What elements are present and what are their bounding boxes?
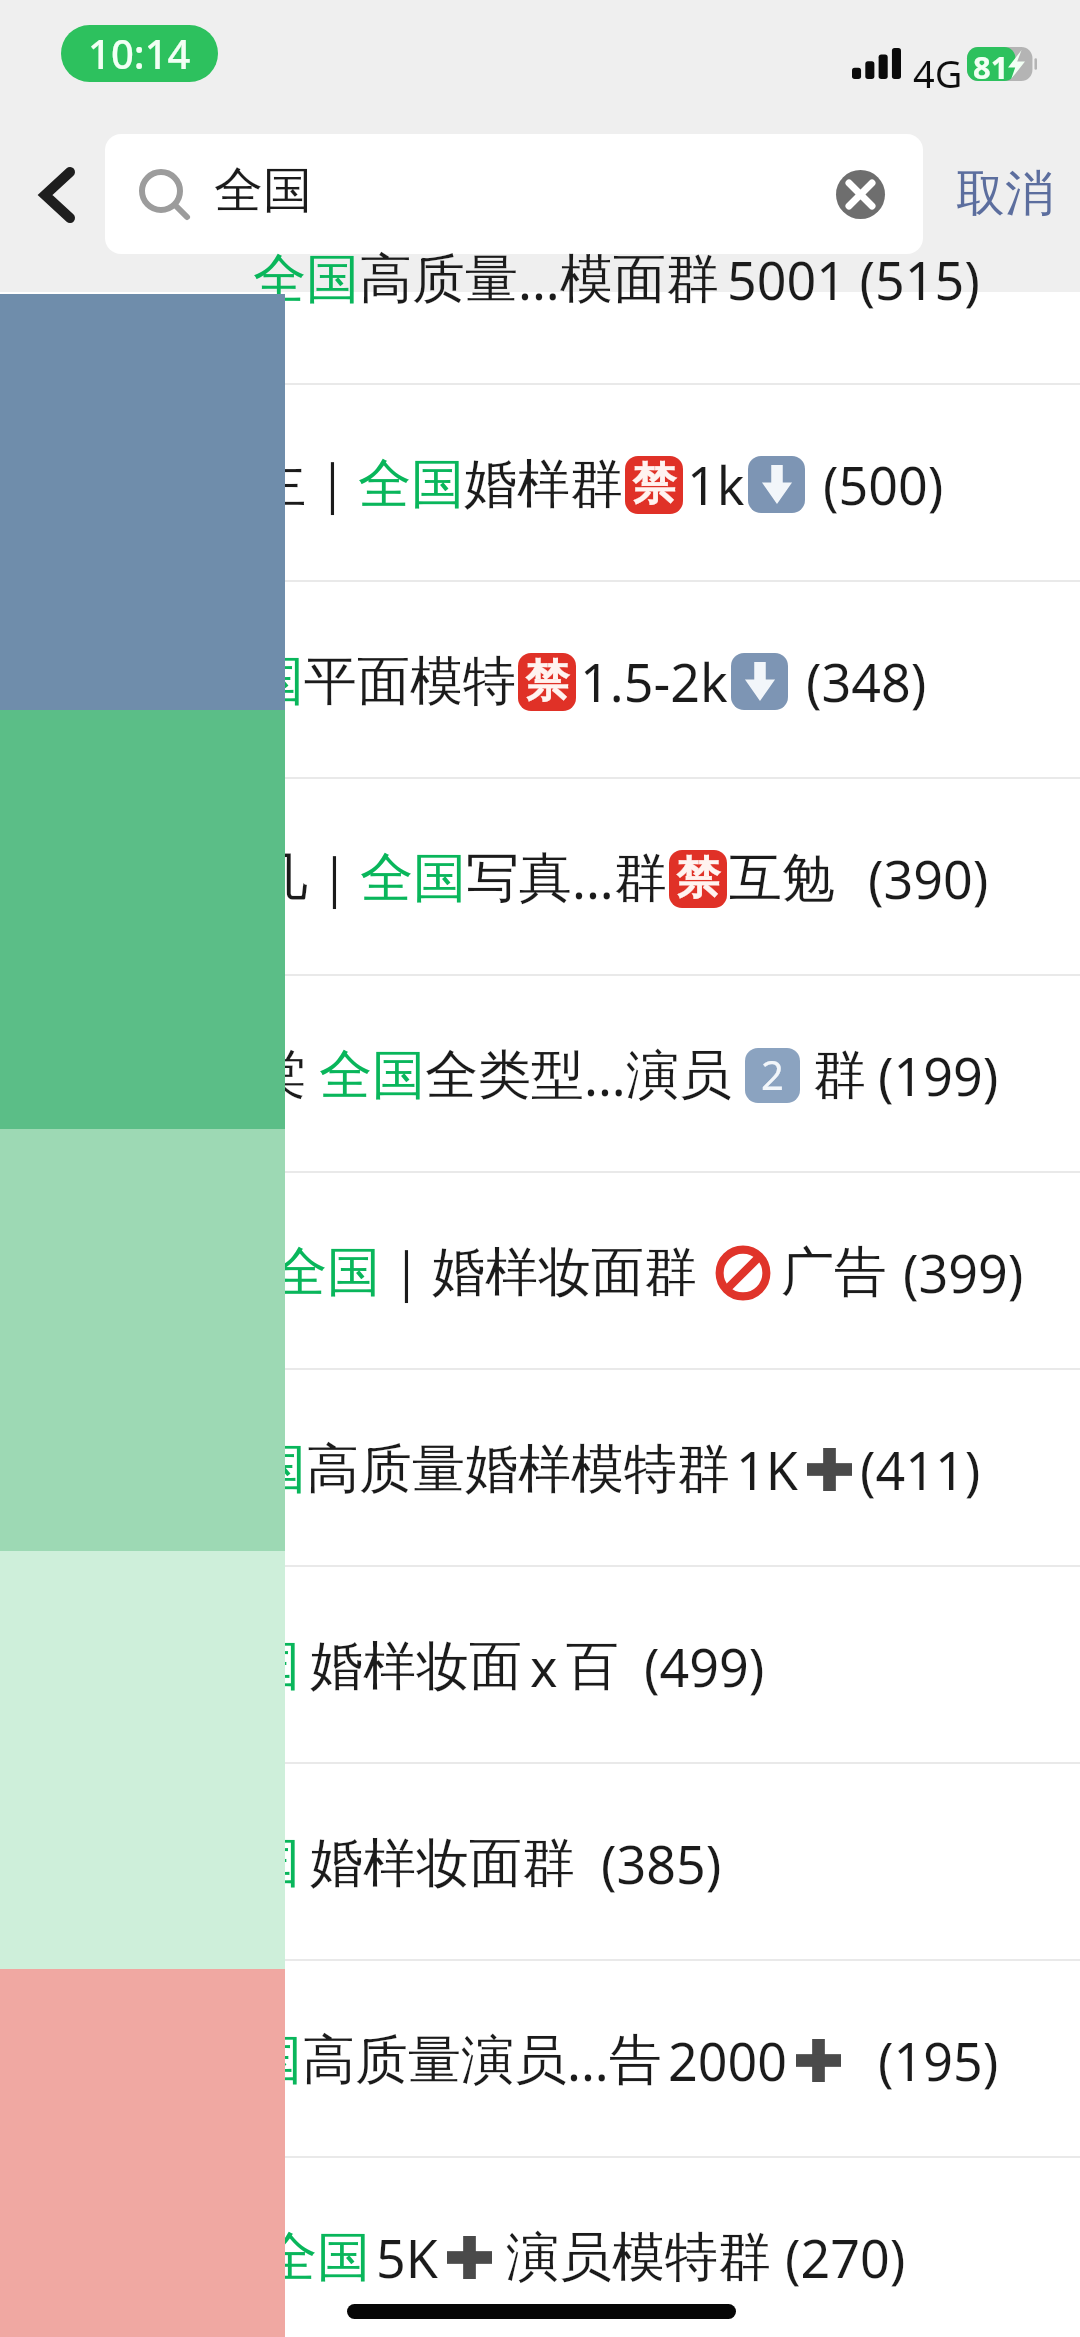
button[interactable]: 国 <box>0 1370 1080 1567</box>
staticText: (348) <box>806 646 927 717</box>
staticText: 全国 <box>319 1042 425 1109</box>
staticText: (399) <box>903 1237 1024 1308</box>
button[interactable]: Clear search <box>828 162 893 227</box>
button[interactable]: 国 <box>0 1567 1080 1764</box>
button[interactable]: 全国 <box>105 134 923 254</box>
staticText: ... <box>584 1040 626 1111</box>
staticText: (270) <box>785 2222 906 2293</box>
staticText: 几｜ <box>255 845 360 912</box>
staticText: 演员模特群 <box>506 2224 771 2291</box>
staticText: 全国 <box>253 246 359 313</box>
staticText: 高质量婚样模特群 <box>306 1436 730 1503</box>
button[interactable]: 棠 <box>0 976 1080 1173</box>
staticText: (499) <box>644 1631 765 1702</box>
staticText: 5001 (515) <box>727 244 980 315</box>
staticText: 群 <box>813 1042 866 1109</box>
staticText: 禁 <box>632 457 676 512</box>
staticText: 高质量演员 <box>302 2027 567 2094</box>
staticText: (195) <box>878 2025 999 2096</box>
staticText: 取消 <box>956 163 1054 225</box>
staticText: 国 <box>247 1830 300 1897</box>
staticText: 禁 <box>525 654 569 709</box>
staticText: ... <box>572 843 614 914</box>
staticText: 1.5-2k <box>580 646 728 717</box>
staticText: 5K <box>376 2222 438 2293</box>
staticText: 4G <box>913 47 963 99</box>
staticText: 国 <box>247 1633 300 1700</box>
staticText: 婚样妆面群 <box>310 1830 575 1897</box>
staticText: 告 <box>609 2027 662 2094</box>
staticText: 演员 <box>626 1042 732 1109</box>
staticText: 国 <box>249 2027 302 2094</box>
staticText: ｜婚样妆面群 <box>380 1239 697 1306</box>
staticText: 2 <box>761 1048 784 1101</box>
staticText: 模面群 <box>560 246 719 313</box>
button[interactable]: 国 <box>0 1961 1080 2158</box>
staticText: ... <box>518 244 560 315</box>
staticText: 百 <box>566 1633 619 1700</box>
staticText: 国 <box>251 648 304 715</box>
staticText: 写真 <box>466 845 572 912</box>
button[interactable]: 全国 <box>0 1173 1080 1370</box>
staticText: 2000 <box>668 2025 787 2096</box>
staticText: 婚样群 <box>464 451 623 518</box>
staticText: 全国 <box>358 451 464 518</box>
staticText: 群 <box>614 845 667 912</box>
button[interactable]: 全国 <box>0 2158 1080 2337</box>
staticText: 平面模特 <box>304 648 516 715</box>
button[interactable]: 主｜ <box>0 385 1080 582</box>
staticText: 10:14 <box>88 26 191 80</box>
staticText: (500) <box>823 449 944 520</box>
staticText: 全国 <box>274 1239 380 1306</box>
staticText: (390) <box>868 843 989 914</box>
staticText: 1K <box>736 1434 798 1505</box>
staticText: (385) <box>601 1828 722 1899</box>
staticText: x <box>530 1631 558 1702</box>
button[interactable]: 取消 <box>940 150 1070 238</box>
staticText: ... <box>567 2025 609 2096</box>
staticText: 棠 <box>254 1042 307 1109</box>
button[interactable]: 国 <box>0 582 1080 779</box>
staticText: (411) <box>860 1434 981 1505</box>
staticText: 国 <box>253 1436 306 1503</box>
staticText: 广告 <box>781 1239 887 1306</box>
staticText: 高质量 <box>359 246 518 313</box>
staticText: 禁 <box>676 851 720 906</box>
staticText: 全国 <box>264 2224 370 2291</box>
button[interactable]: 国 <box>0 1764 1080 1961</box>
button[interactable]: 全国 <box>0 292 1080 385</box>
staticText: 全国 <box>214 160 312 222</box>
staticText: 互勉 <box>729 845 835 912</box>
staticText: 全国 <box>360 845 466 912</box>
staticText: 婚样妆面 <box>310 1633 522 1700</box>
staticText: 主｜ <box>253 451 358 518</box>
staticText: 81 <box>973 46 1009 80</box>
staticText: (199) <box>878 1040 999 1111</box>
button[interactable]: 几｜ <box>0 779 1080 976</box>
button[interactable]: Back <box>14 156 100 234</box>
staticText: 全类型 <box>425 1042 584 1109</box>
staticText: 1k <box>687 449 745 520</box>
